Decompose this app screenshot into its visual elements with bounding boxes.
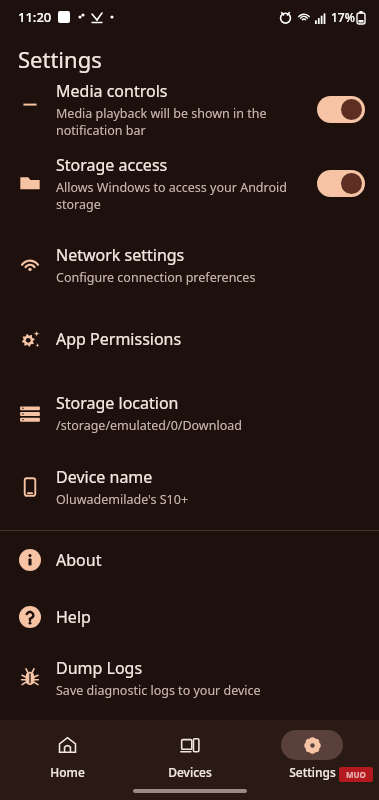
staticText: Devices — [168, 764, 212, 780]
staticText: Oluwademilade's S10+ — [56, 491, 189, 508]
button[interactable]: Dump Logs — [0, 645, 379, 711]
staticText: Home — [50, 764, 85, 780]
staticText: Save diagnostic logs to your device — [56, 682, 261, 699]
button[interactable]: Device name — [0, 450, 379, 524]
button[interactable]: Storage access — [0, 138, 379, 228]
staticText: Settings — [289, 764, 336, 780]
button[interactable]: About — [0, 531, 379, 588]
button[interactable]: Storage location — [0, 376, 379, 450]
staticText: Help — [56, 606, 91, 628]
staticText: Network settings — [56, 244, 185, 266]
staticText: App Permissions — [56, 328, 182, 350]
other: Toggle Storage access — [317, 170, 365, 197]
staticText: Storage access — [56, 154, 168, 176]
staticText: Allows Windows to access your Android st… — [56, 179, 317, 213]
staticText: Settings — [18, 44, 102, 74]
button[interactable]: Devices — [135, 724, 245, 780]
button[interactable]: Network settings — [0, 228, 379, 302]
staticText: Configure connection preferences — [56, 269, 256, 286]
staticText: MUO — [346, 769, 366, 780]
staticText: Media controls — [56, 80, 168, 102]
staticText: Dump Logs — [56, 657, 143, 679]
other: Toggle media controls — [317, 96, 365, 123]
staticText: Device name — [56, 466, 153, 488]
button[interactable]: App Permissions — [0, 302, 379, 376]
staticText: 11:20 — [18, 8, 52, 26]
button[interactable]: Help — [0, 588, 379, 645]
button[interactable]: Settings — [257, 724, 367, 780]
button[interactable]: Media controls — [0, 80, 379, 138]
button[interactable]: Home — [12, 724, 122, 780]
staticText: 17% — [331, 9, 355, 25]
staticText: /storage/emulated/0/Download — [56, 417, 242, 434]
staticText: Storage location — [56, 392, 179, 414]
staticText: Media playback will be shown in the noti… — [56, 105, 317, 138]
staticText: About — [56, 549, 102, 571]
